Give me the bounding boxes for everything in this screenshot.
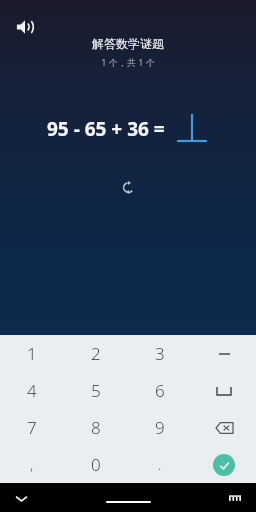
button[interactable]: 4 xyxy=(0,372,64,409)
button[interactable]: 7 xyxy=(0,409,64,446)
staticText: . xyxy=(158,455,162,474)
staticText: 2 xyxy=(91,342,101,365)
staticText: 8 xyxy=(91,416,101,439)
button[interactable]: Minus xyxy=(192,335,256,372)
button[interactable]: 9 xyxy=(128,409,192,446)
staticText: 解答数学谜题 xyxy=(92,36,164,51)
staticText: 6 xyxy=(155,379,165,402)
staticText: 9 xyxy=(155,416,165,439)
staticText: 3 xyxy=(155,342,165,365)
button[interactable]: 8 xyxy=(64,409,128,446)
button[interactable]: 5 xyxy=(64,372,128,409)
staticText: 4 xyxy=(27,379,37,402)
staticText: 1 xyxy=(27,342,37,365)
button[interactable]: Enter xyxy=(192,446,256,483)
staticText: 95 - 65 + 36 = xyxy=(47,116,165,142)
staticText: 7 xyxy=(27,416,37,439)
button[interactable]: Sound xyxy=(12,14,38,40)
button[interactable]: Change keyboard xyxy=(222,485,248,511)
button[interactable]: 6 xyxy=(128,372,192,409)
button[interactable]: 0 xyxy=(64,446,128,483)
button[interactable]: Space xyxy=(192,372,256,409)
button[interactable]: Hide keyboard xyxy=(8,485,34,511)
button[interactable]: Backspace xyxy=(192,409,256,446)
button[interactable]: , xyxy=(0,446,64,483)
button[interactable]: Refresh xyxy=(115,174,141,200)
staticText: , xyxy=(30,455,34,474)
button[interactable]: 1 xyxy=(0,335,64,372)
button[interactable]: 3 xyxy=(128,335,192,372)
staticText: 0 xyxy=(91,453,101,476)
button[interactable] xyxy=(175,112,209,146)
staticText: 1 个，共 1 个 xyxy=(101,56,155,68)
staticText: 5 xyxy=(91,379,101,402)
button[interactable]: 2 xyxy=(64,335,128,372)
